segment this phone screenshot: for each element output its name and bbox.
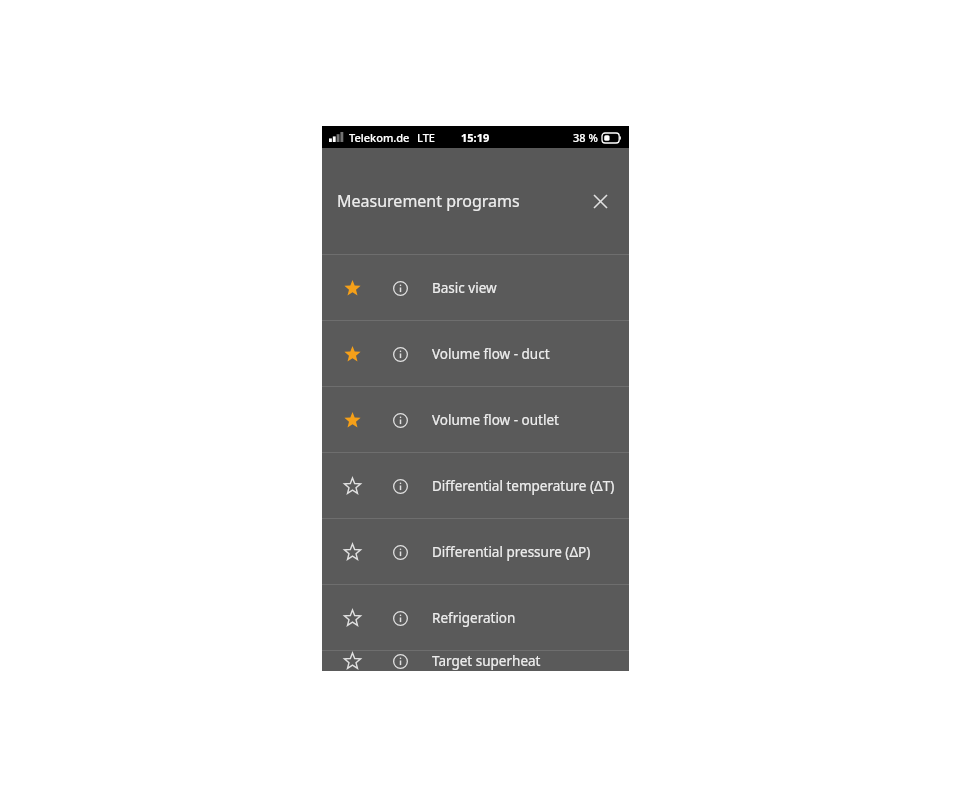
- button[interactable]: Remove from favourites: [336, 272, 368, 304]
- staticText: Target superheat: [432, 652, 541, 670]
- button[interactable]: Info: [385, 537, 415, 567]
- button[interactable]: Add to favourites: [322, 453, 629, 518]
- button[interactable]: Add to favourites: [336, 470, 368, 502]
- button[interactable]: Add to favourites: [336, 651, 368, 671]
- button[interactable]: Add to favourites: [322, 585, 629, 650]
- staticText: Telekom.de: [349, 130, 410, 145]
- staticText: LTE: [417, 130, 435, 145]
- staticText: 38 %: [573, 130, 598, 145]
- staticText: Measurement programs: [337, 190, 520, 212]
- staticText: 15:19: [461, 130, 490, 145]
- staticText: Basic view: [432, 279, 497, 297]
- button[interactable]: Remove from favourites: [322, 387, 629, 452]
- staticText: Volume flow - duct: [432, 345, 550, 363]
- button[interactable]: Info: [385, 603, 415, 633]
- staticText: Differential pressure (ΔP): [432, 543, 591, 561]
- button[interactable]: Info: [385, 471, 415, 501]
- button[interactable]: Info: [385, 651, 415, 671]
- button[interactable]: Add to favourites: [322, 651, 629, 671]
- button[interactable]: Add to favourites: [336, 602, 368, 634]
- button[interactable]: Remove from favourites: [336, 404, 368, 436]
- button[interactable]: Remove from favourites: [322, 321, 629, 386]
- staticText: Volume flow - outlet: [432, 411, 559, 429]
- button[interactable]: Info: [385, 405, 415, 435]
- button[interactable]: Info: [385, 273, 415, 303]
- button[interactable]: Add to favourites: [336, 536, 368, 568]
- button[interactable]: Remove from favourites: [322, 255, 629, 320]
- button[interactable]: Info: [385, 339, 415, 369]
- staticText: Refrigeration: [432, 609, 516, 627]
- button[interactable]: Add to favourites: [322, 519, 629, 584]
- button[interactable]: Remove from favourites: [336, 338, 368, 370]
- staticText: Differential temperature (ΔT): [432, 477, 615, 495]
- button[interactable]: Close: [584, 185, 616, 217]
